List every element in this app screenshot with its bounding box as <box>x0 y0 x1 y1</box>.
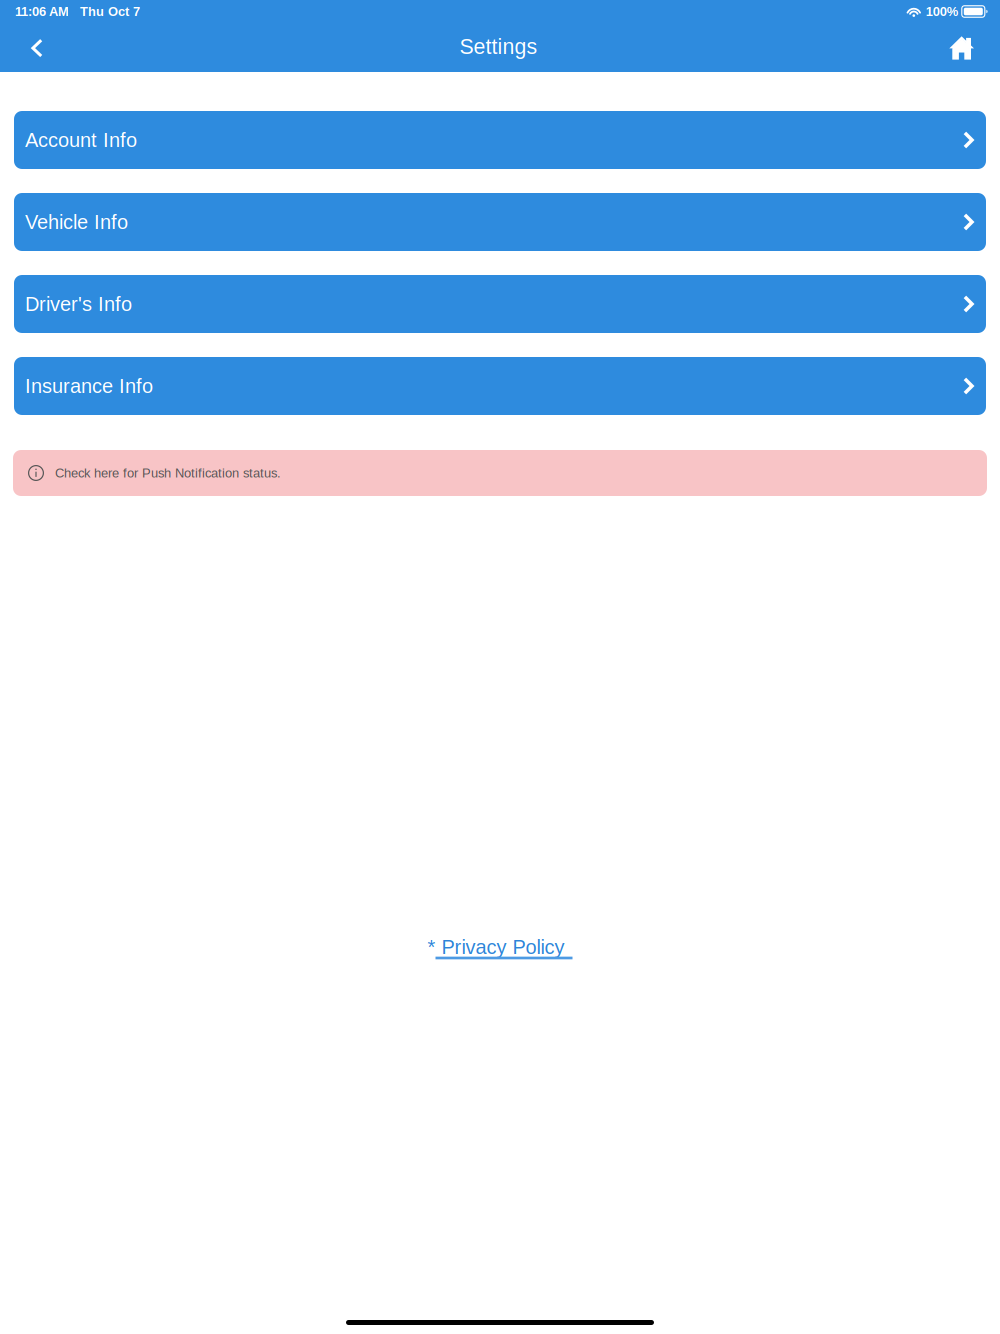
staticText: Thu Oct 7 <box>80 4 140 19</box>
button[interactable]: * <box>427 936 572 959</box>
staticText: Privacy Policy <box>435 936 564 958</box>
staticText: 11:06 AM <box>15 4 69 19</box>
staticText: Account Info <box>25 129 137 151</box>
staticText: Check here for Push Notification status. <box>55 466 281 480</box>
button[interactable]: Insurance Info <box>14 357 986 415</box>
button[interactable]: Home <box>935 30 1000 66</box>
staticText: Driver's Info <box>25 293 132 315</box>
staticText: Vehicle Info <box>25 211 128 233</box>
button[interactable]: Account Info <box>14 111 986 169</box>
staticText: * <box>427 936 435 958</box>
button[interactable]: Vehicle Info <box>14 193 986 251</box>
button[interactable]: Back <box>0 29 57 66</box>
staticText: Insurance Info <box>25 375 153 397</box>
staticText: 100% <box>926 4 959 19</box>
button[interactable]: Driver's Info <box>14 275 986 333</box>
staticText: Settings <box>459 35 537 58</box>
